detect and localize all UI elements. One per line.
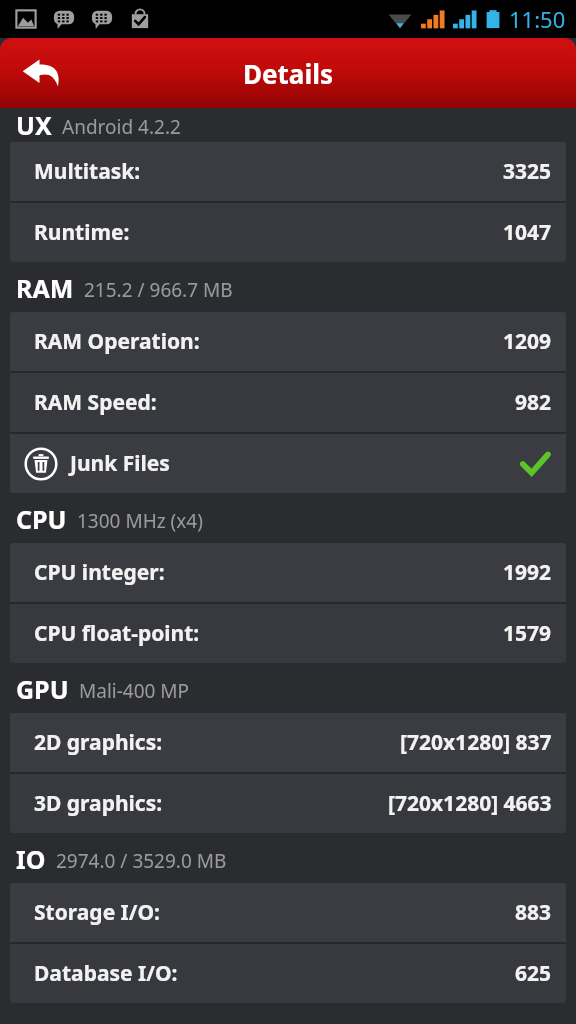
staticText: GPU [16,672,69,706]
button[interactable]: Multitask: [10,142,566,201]
staticText: Multitask: [34,157,141,186]
staticText: IO [16,842,46,876]
staticText: 215.2 / 966.7 MB [84,277,233,303]
staticText: 982 [515,388,552,417]
staticText: 883 [515,898,552,927]
button[interactable]: Storage I/O: [10,883,566,942]
button[interactable]: Database I/O: [10,944,566,1003]
staticText: 1209 [503,327,552,356]
staticText: CPU integer: [34,558,165,587]
staticText: RAM Speed: [34,388,157,417]
staticText: Junk Files [70,449,170,478]
staticText: 1992 [503,558,552,587]
button[interactable]: RAM Operation: [10,312,566,371]
staticText: 3325 [503,157,552,186]
staticText: 3D graphics: [34,789,163,818]
button[interactable]: Junk Files [10,434,566,493]
staticText: Database I/O: [34,959,178,988]
button[interactable]: 3D graphics: [10,774,566,833]
staticText: UX [16,108,52,142]
staticText: 1579 [503,619,552,648]
staticText: [720x1280] 837 [400,728,552,757]
button[interactable]: CPU float-point: [10,604,566,663]
staticText: [720x1280] 4663 [388,789,552,818]
button[interactable]: CPU integer: [10,543,566,602]
staticText: Runtime: [34,218,130,247]
staticText: Details [243,56,333,91]
staticText: RAM Operation: [34,327,200,356]
staticText: Android 4.2.2 [62,114,181,140]
button[interactable]: Back [10,41,74,105]
button[interactable]: Runtime: [10,203,566,262]
button[interactable]: RAM Speed: [10,373,566,432]
staticText: 1047 [503,218,552,247]
staticText: 11:50 [509,4,566,34]
staticText: 1300 MHz (x4) [77,508,203,534]
staticText: CPU float-point: [34,619,200,648]
staticText: RAM [16,271,74,305]
staticText: 2974.0 / 3529.0 MB [56,848,227,874]
button[interactable]: 2D graphics: [10,713,566,772]
staticText: Mali-400 MP [79,678,190,704]
staticText: CPU [16,502,67,536]
staticText: Storage I/O: [34,898,161,927]
staticText: 625 [515,959,552,988]
staticText: 2D graphics: [34,728,163,757]
